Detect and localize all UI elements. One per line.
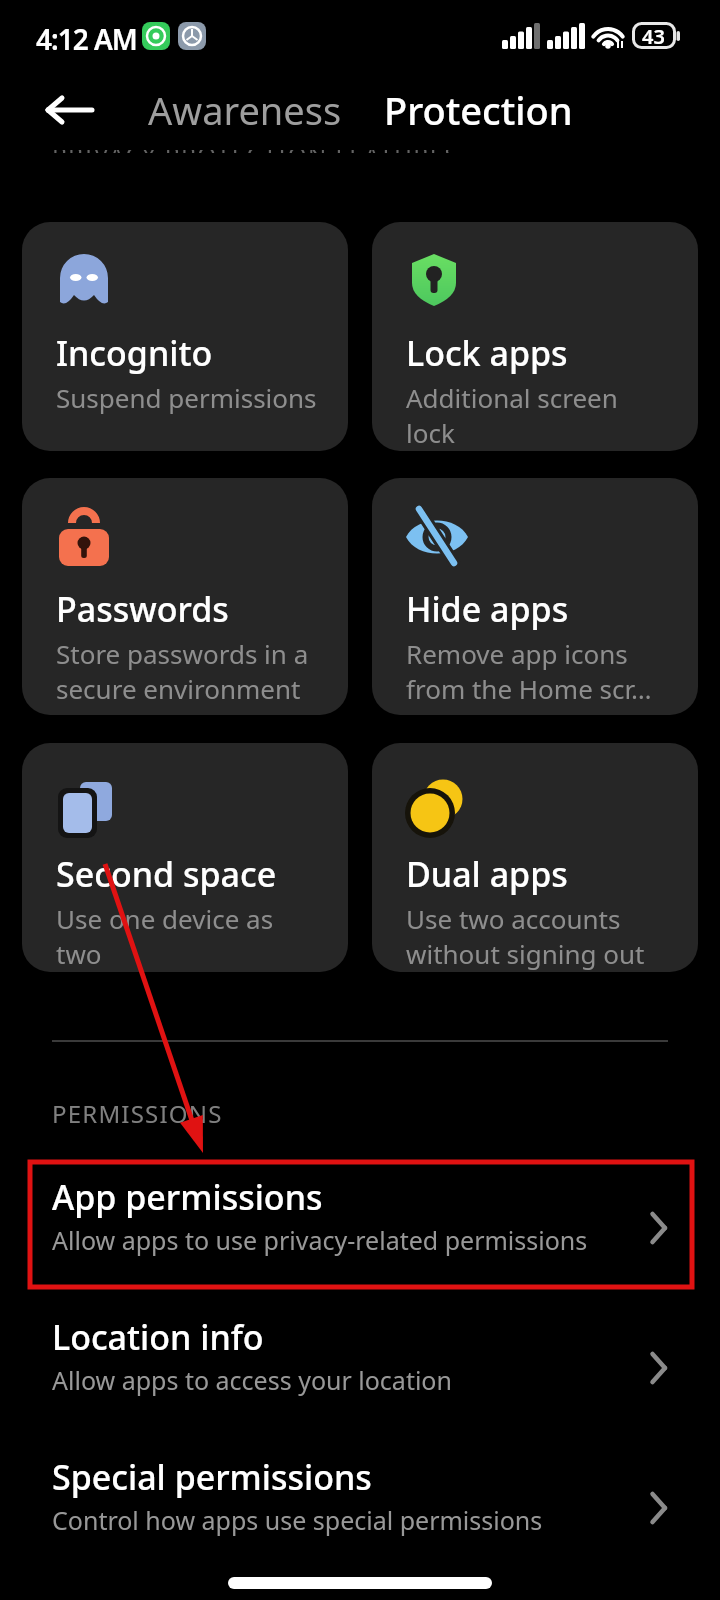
staticText: Location info [52,1314,264,1360]
button[interactable]: Awareness [148,84,342,136]
button[interactable]: Incognito [22,222,348,451]
button[interactable] [38,80,102,140]
staticText: Protection [384,84,573,136]
staticText: PERMISSIONS [52,1097,223,1130]
staticText: two [56,936,102,971]
staticText: 43 [642,23,665,50]
staticText: Additional screen [406,380,618,415]
staticText: Awareness [148,84,342,136]
button[interactable]: Special permissions [0,1438,720,1578]
button[interactable]: Protection [384,84,573,136]
staticText: Remove app icons [406,636,628,671]
staticText: App permissions [52,1174,323,1220]
staticText: PRIVACY PROTECTION FEATURES [52,150,460,153]
staticText: Use one device as [56,901,274,936]
staticText: Passwords [56,586,229,632]
staticText: 4:12 AM [36,20,137,52]
staticText: Dual apps [406,851,568,897]
staticText: Control how apps use special permissions [52,1503,543,1537]
button[interactable]: Passwords [22,478,348,715]
button[interactable]: Hide apps [372,478,698,715]
staticText: Lock apps [406,330,568,376]
button[interactable]: Dual apps [372,743,698,972]
staticText: Allow apps to use privacy-related permis… [52,1223,588,1257]
staticText: lock [406,415,455,450]
button[interactable]: Lock apps [372,222,698,451]
button[interactable]: Second space [22,743,348,972]
staticText: Second space [56,851,277,897]
staticText: Use two accounts [406,901,621,936]
staticText: Suspend permissions [56,380,317,415]
staticText: Store passwords in a [56,636,309,671]
staticText: secure environment [56,671,301,706]
staticText: without signing out [406,936,645,971]
staticText: from the Home scr… [406,671,652,706]
button[interactable]: App permissions [0,1158,720,1298]
staticText: Allow apps to access your location [52,1363,452,1397]
staticText: Incognito [56,330,213,376]
button[interactable]: Location info [0,1298,720,1438]
staticText: Hide apps [406,586,569,632]
staticText: Special permissions [52,1454,372,1500]
